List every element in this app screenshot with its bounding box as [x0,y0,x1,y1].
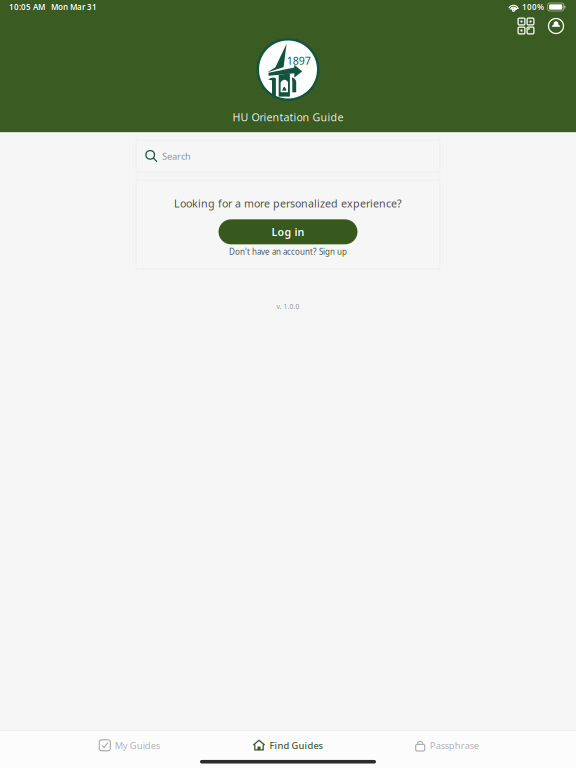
staticText: Don't have an account? [229,246,316,257]
button[interactable]: Account [546,16,566,36]
button[interactable]: Find Guides [209,731,367,760]
staticText: v. 1.0.0 [276,302,299,311]
staticText: My Guides [115,739,160,751]
button[interactable]: My Guides [50,731,209,760]
button[interactable]: Search [136,140,440,172]
staticText: HU Orientation Guide [232,110,343,124]
staticText: Looking for a more personalized experien… [174,196,402,210]
staticText: Sign up [319,246,347,257]
staticText: Passphrase [430,739,479,751]
staticText: Search [162,150,191,162]
staticText: 100% [522,2,544,12]
button[interactable]: Scan QR code [516,16,536,36]
button[interactable]: Log in [218,219,357,244]
button[interactable]: Don't have an account? [229,246,347,257]
button[interactable]: Passphrase [367,731,526,760]
staticText: 1897 [287,53,311,68]
staticText: Mon Mar 31 [51,2,97,12]
staticText: 10:05 AM [9,2,45,12]
staticText: Log in [271,225,304,239]
staticText: Find Guides [269,739,323,751]
